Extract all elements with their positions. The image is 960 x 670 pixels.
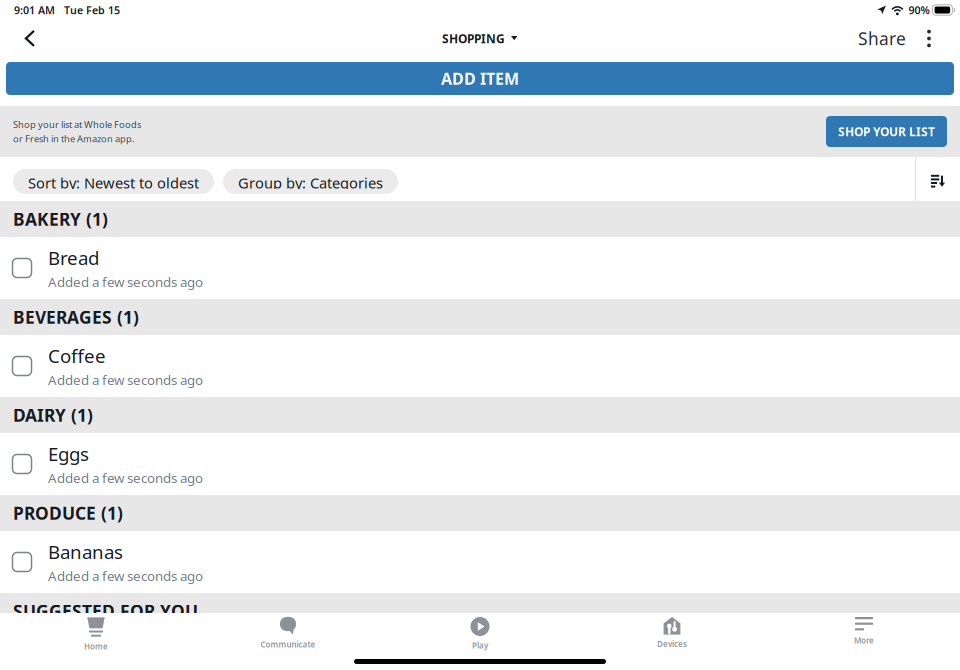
staticText: Play	[472, 640, 488, 651]
staticText: Bread	[48, 245, 99, 270]
staticText: ADD ITEM	[441, 68, 519, 89]
button[interactable]: Sort	[916, 157, 960, 201]
staticText: Added a few seconds ago	[48, 273, 203, 291]
button[interactable]: ADD ITEM	[6, 62, 954, 95]
staticText: Coffee	[48, 343, 106, 368]
button[interactable]: Group by: Categories	[223, 169, 398, 194]
button[interactable]: Communicate	[192, 617, 384, 659]
staticText: Added a few seconds ago	[48, 371, 203, 389]
staticText: Home	[84, 641, 108, 652]
staticText: SUGGESTED FOR YOU	[13, 599, 198, 622]
button[interactable]: SHOP YOUR LIST	[826, 116, 947, 147]
staticText: More	[854, 635, 874, 646]
button[interactable]: Coffee	[0, 335, 960, 397]
staticText: BEVERAGES (1)	[13, 305, 139, 328]
button[interactable]: Devices	[576, 617, 768, 659]
staticText: or Fresh in the Amazon app.	[13, 132, 135, 145]
staticText: Share	[858, 27, 906, 50]
staticText: Devices	[657, 639, 687, 649]
staticText: DAIRY (1)	[13, 403, 93, 426]
staticText: SHOPPING	[442, 30, 505, 46]
button[interactable]: Back	[10, 20, 50, 57]
button[interactable]: More options	[912, 20, 946, 57]
staticText: Added a few seconds ago	[48, 469, 203, 487]
button[interactable]: Share	[852, 20, 912, 57]
button[interactable]: Eggs	[0, 433, 960, 495]
button[interactable]: Bread	[0, 237, 960, 299]
button[interactable]: More	[768, 617, 960, 659]
staticText: Communicate	[260, 639, 315, 650]
staticText: Tue Feb 15	[64, 3, 120, 17]
staticText: 90%	[908, 3, 929, 17]
staticText: Bananas	[48, 539, 123, 564]
button[interactable]: SHOPPING	[436, 20, 524, 57]
staticText: Added a few seconds ago	[48, 567, 203, 585]
staticText: Eggs	[48, 441, 89, 466]
button[interactable]: Home	[0, 617, 192, 659]
staticText: BAKERY (1)	[13, 207, 108, 230]
staticText: SHOP YOUR LIST	[838, 123, 935, 139]
staticText: Sort by: Newest to oldest	[28, 173, 199, 192]
button[interactable]: Bananas	[0, 531, 960, 593]
button[interactable]: Play	[384, 617, 576, 659]
staticText: Shop your list at Whole Foods	[13, 118, 141, 130]
staticText: Group by: Categories	[238, 173, 383, 192]
staticText: PRODUCE (1)	[13, 501, 123, 524]
staticText: 9:01 AM	[14, 3, 55, 17]
button[interactable]: Sort by: Newest to oldest	[13, 169, 214, 194]
